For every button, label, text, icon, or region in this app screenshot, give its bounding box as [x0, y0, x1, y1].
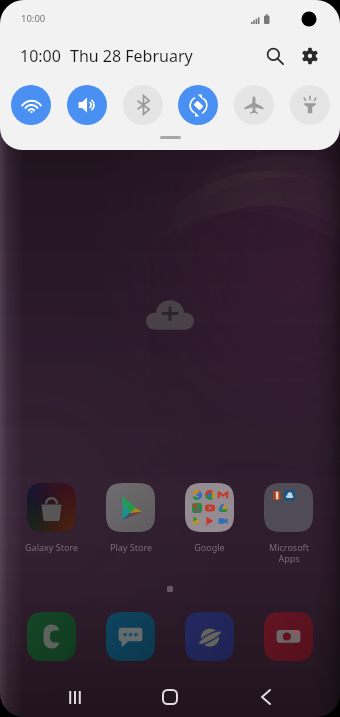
- button[interactable]: Play Store: [91, 483, 170, 553]
- button[interactable]: Phone: [12, 612, 91, 661]
- button[interactable]: Sound: [67, 85, 107, 125]
- staticText: Google: [194, 541, 225, 553]
- button[interactable]: Recents: [55, 677, 95, 717]
- staticText: Microsoft Apps: [269, 541, 309, 564]
- staticText: Play Store: [110, 541, 152, 553]
- button[interactable]: Auto rotate: [178, 85, 218, 125]
- button[interactable]: Microsoft Apps: [249, 483, 328, 564]
- staticText: 10:00: [21, 12, 46, 25]
- button[interactable]: Search: [259, 41, 291, 71]
- button[interactable]: Back: [246, 677, 286, 717]
- staticText: Thu 28 February: [70, 45, 193, 67]
- staticText: Galaxy Store: [25, 541, 78, 553]
- button[interactable]: Flashlight: [290, 85, 330, 125]
- button[interactable]: Settings: [294, 41, 326, 71]
- button[interactable]: Home: [150, 677, 190, 717]
- button[interactable]: Internet: [170, 612, 249, 661]
- button[interactable]: Bluetooth: [123, 85, 163, 125]
- button[interactable]: Wi-Fi: [11, 85, 51, 125]
- staticText: 10:00: [20, 45, 61, 67]
- button[interactable]: Flight mode: [234, 85, 274, 125]
- button[interactable]: Google: [170, 483, 249, 553]
- button[interactable]: Camera: [249, 612, 328, 661]
- button[interactable]: Messages: [91, 612, 170, 661]
- button[interactable]: Galaxy Store: [12, 483, 91, 553]
